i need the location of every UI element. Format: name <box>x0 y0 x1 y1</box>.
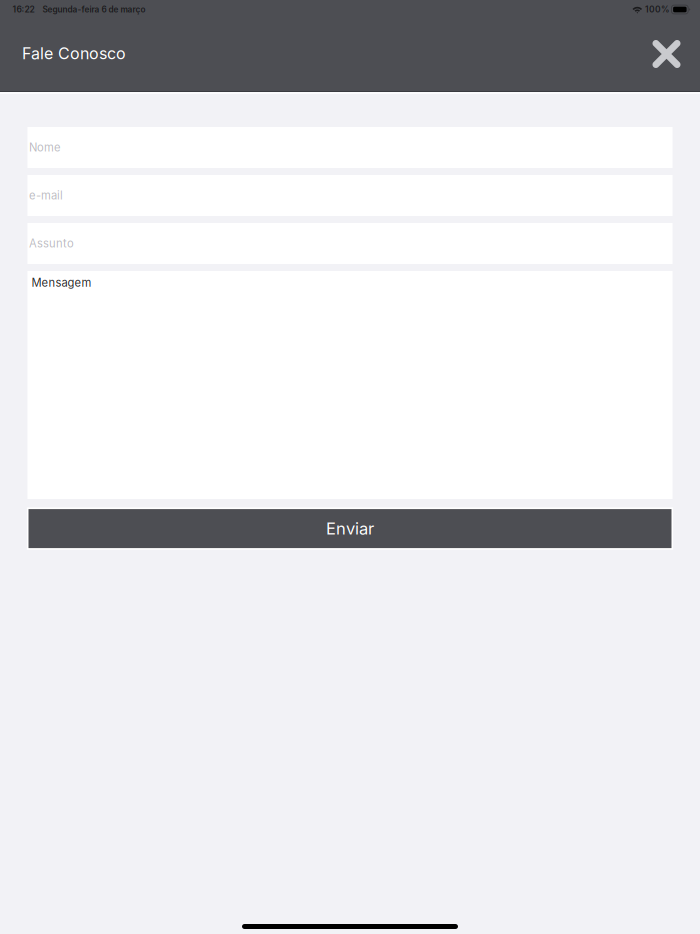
staticText: Enviar <box>326 519 374 539</box>
staticText: Segunda-feira 6 de março <box>42 4 145 14</box>
staticText: Fale Conosco <box>22 44 126 63</box>
button[interactable]: Enviar <box>27 507 673 550</box>
button[interactable]: Fechar <box>641 24 691 86</box>
staticText: 16:22 <box>12 4 34 15</box>
staticText: Mensagem <box>31 276 91 290</box>
staticText: e-mail <box>29 189 63 202</box>
staticText: Nome <box>29 141 61 154</box>
staticText: 100% <box>645 4 670 15</box>
staticText: Assunto <box>29 237 74 250</box>
